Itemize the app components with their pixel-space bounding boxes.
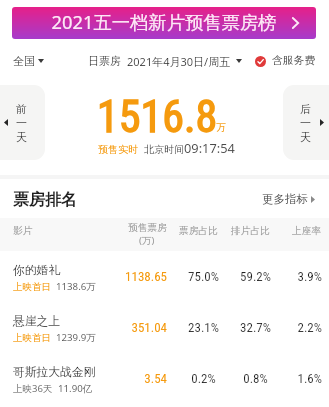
staticText: 北京时间 — [144, 143, 184, 156]
staticText: 票房占比 — [179, 225, 218, 237]
staticText: 预售票房 — [128, 222, 167, 234]
button[interactable]: 票房排名 — [13, 190, 77, 210]
staticText: 3.54 — [117, 371, 167, 386]
staticText: 0.8% — [235, 371, 276, 386]
staticText: 更多指标 — [262, 192, 308, 206]
staticText: 0.2% — [183, 371, 224, 386]
button[interactable]: 哥斯拉大战金刚 — [0, 353, 329, 404]
staticText: 2.2% — [272, 320, 322, 335]
staticText: 哥斯拉大战金刚 — [13, 365, 96, 380]
staticText: 天 — [300, 130, 311, 144]
staticText: 上映36天 — [13, 382, 53, 395]
staticText: 前 — [16, 102, 27, 116]
staticText: 上映首日 — [13, 281, 51, 293]
staticText: 1516.8 — [97, 91, 218, 143]
button[interactable]: 2021五一档新片预售票房榜 — [12, 7, 316, 39]
staticText: 排片占比 — [231, 225, 270, 237]
staticText: 一 — [300, 116, 311, 130]
staticText: 后 — [300, 102, 311, 116]
staticText: 2021年4月30日/周五 — [127, 54, 231, 68]
button[interactable]: 后一天 — [283, 85, 329, 160]
staticText: 预售实时 — [98, 143, 138, 156]
staticText: 351.04 — [117, 320, 167, 335]
button[interactable]: 你的婚礼 — [0, 251, 329, 302]
staticText: 1138.65 — [117, 269, 167, 284]
staticText: 2021五一档新片预售票房榜 — [12, 9, 316, 34]
staticText: 上映首日 — [13, 332, 51, 344]
staticText: (万) — [139, 234, 155, 247]
staticText: 天 — [16, 130, 27, 144]
staticText: 影片 — [13, 225, 33, 237]
staticText: 1138.6万 — [56, 280, 96, 293]
button[interactable]: 更多指标 — [262, 192, 315, 206]
button[interactable]: 前一天 — [0, 85, 45, 160]
staticText: 23.1% — [183, 320, 224, 335]
staticText: 3.9% — [272, 269, 322, 284]
button[interactable]: 含服务费 — [255, 54, 316, 68]
staticText: 万 — [216, 121, 226, 134]
staticText: 09:17:54 — [184, 139, 235, 156]
staticText: 日票房 — [88, 54, 121, 68]
staticText: 32.7% — [235, 320, 276, 335]
staticText: 11.90亿 — [58, 382, 93, 395]
staticText: 含服务费 — [272, 54, 316, 68]
staticText: 上座率 — [292, 225, 322, 237]
staticText: 你的婚礼 — [13, 263, 61, 278]
staticText: 75.0% — [183, 269, 224, 284]
staticText: 59.2% — [235, 269, 276, 284]
staticText: 全国 — [13, 54, 35, 68]
button[interactable]: 全国 — [13, 54, 44, 68]
button[interactable]: 2021年4月30日/周五 — [127, 54, 242, 68]
staticText: 悬崖之上 — [13, 314, 61, 329]
staticText: 1.6% — [272, 371, 322, 386]
staticText: 一 — [16, 116, 27, 130]
button[interactable]: 悬崖之上 — [0, 302, 329, 353]
staticText: 票房排名 — [13, 190, 77, 210]
staticText: 1239.9万 — [56, 331, 96, 344]
